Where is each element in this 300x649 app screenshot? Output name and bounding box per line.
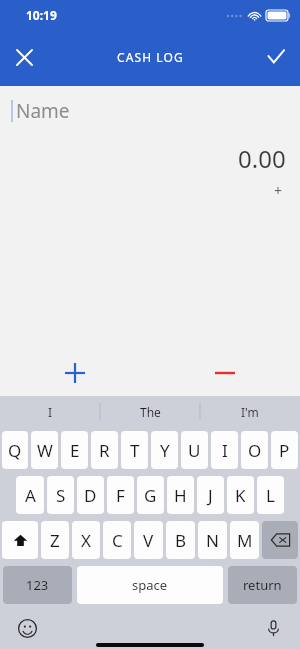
button[interactable]: 123 (3, 566, 72, 604)
staticText: W (37, 439, 53, 462)
button[interactable]: B (166, 521, 195, 559)
staticText: 123 (26, 576, 49, 594)
button[interactable]: U (181, 431, 208, 469)
button[interactable]: D (77, 476, 104, 514)
staticText: K (235, 484, 246, 507)
staticText: Y (160, 439, 170, 462)
button[interactable]: Y (151, 431, 178, 469)
button[interactable]: P (271, 431, 298, 469)
staticText: 10:19 (26, 7, 57, 23)
staticText: H (174, 484, 187, 507)
button[interactable]: A (16, 476, 44, 514)
button[interactable]: Name (11, 98, 300, 124)
button[interactable]: space (77, 566, 223, 604)
button[interactable]: Emoji (14, 615, 40, 641)
button[interactable]: 0.00 (0, 142, 286, 175)
staticText: G (144, 484, 157, 507)
staticText: O (248, 439, 262, 462)
button[interactable]: Shift (2, 521, 38, 559)
staticText: M (237, 529, 253, 552)
button[interactable]: C (103, 521, 131, 559)
button[interactable]: I (0, 396, 100, 427)
staticText: C (112, 529, 123, 552)
button[interactable]: Add income (53, 351, 97, 395)
staticText: V (143, 529, 154, 552)
button[interactable]: N (198, 521, 227, 559)
button[interactable]: L (257, 476, 284, 514)
staticText: return (243, 576, 282, 594)
button[interactable]: Add expense (203, 351, 247, 395)
staticText: F (116, 484, 125, 507)
staticText: I (48, 404, 53, 420)
button[interactable]: S (47, 476, 74, 514)
staticText: P (279, 439, 290, 462)
staticText: The (140, 404, 161, 420)
button[interactable]: H (167, 476, 194, 514)
button[interactable]: Q (2, 431, 28, 469)
staticText: D (84, 484, 97, 507)
staticText: Name (16, 98, 70, 124)
button[interactable]: The (100, 396, 200, 427)
staticText: U (188, 439, 201, 462)
staticText: CASH LOG (117, 49, 184, 65)
button[interactable]: V (134, 521, 163, 559)
button[interactable]: I'm (200, 396, 300, 427)
staticText: N (206, 529, 219, 552)
staticText: S (56, 484, 66, 507)
button[interactable]: G (137, 476, 164, 514)
staticText: I (222, 439, 228, 462)
button[interactable]: Save (252, 33, 300, 81)
staticText: Z (50, 529, 60, 552)
staticText: L (266, 484, 275, 507)
button[interactable]: F (107, 476, 134, 514)
staticText: B (175, 529, 187, 552)
button[interactable]: Z (41, 521, 69, 559)
button[interactable]: Voice input (260, 615, 286, 641)
staticText: space (132, 576, 168, 594)
button[interactable]: W (31, 431, 58, 469)
button[interactable]: E (61, 431, 88, 469)
staticText: + (274, 181, 283, 200)
button[interactable]: Close (0, 33, 48, 81)
button[interactable]: T (121, 431, 148, 469)
staticText: A (25, 484, 36, 507)
button[interactable]: Backspace (262, 521, 298, 559)
button[interactable]: O (241, 431, 268, 469)
staticText: 0.00 (238, 142, 286, 175)
staticText: E (70, 439, 80, 462)
staticText: T (130, 439, 140, 462)
button[interactable]: return (228, 566, 297, 604)
button[interactable]: M (230, 521, 259, 559)
staticText: I'm (241, 404, 259, 420)
button[interactable]: R (91, 431, 118, 469)
staticText: R (99, 439, 110, 462)
staticText: X (81, 529, 91, 552)
button[interactable]: X (72, 521, 100, 559)
button[interactable]: K (227, 476, 254, 514)
button[interactable]: J (197, 476, 224, 514)
staticText: J (208, 484, 213, 507)
staticText: Q (8, 439, 22, 462)
button[interactable]: I (211, 431, 238, 469)
